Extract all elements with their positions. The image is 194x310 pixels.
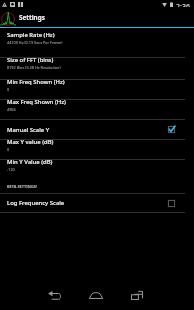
- button[interactable]: Min Freq Shown (Hz): [0, 80, 194, 99]
- button[interactable]: Log Frequency Scale: [0, 194, 194, 212]
- staticText: Sample Rate (Hz): [7, 31, 55, 39]
- staticText: Manual Scale Y: [7, 126, 50, 134]
- button[interactable]: Home: [82, 282, 110, 308]
- staticText: 44100 Hz (0.19 Secs Per Frame): [7, 40, 63, 45]
- staticText: Min Y Value (dB): [7, 158, 53, 166]
- staticText: 8192 Bins (5.38 Hz Resolution): [7, 65, 61, 70]
- staticText: 4956: [7, 107, 16, 112]
- staticText: 2:36: [176, 2, 190, 7]
- button[interactable]: Recents: [123, 282, 151, 308]
- button[interactable]: Min Y Value (dB): [0, 160, 194, 179]
- staticText: Settings: [19, 13, 45, 22]
- staticText: BETA SETTINGS!: [7, 184, 38, 189]
- staticText: Min Freq Shown (Hz): [7, 78, 65, 86]
- staticText: Max Freq Shown (Hz): [7, 98, 66, 106]
- button[interactable]: Max Y value (dB): [0, 140, 194, 159]
- staticText: Max Y value (dB): [7, 138, 54, 146]
- staticText: Size of FFT (bins): [7, 56, 54, 64]
- staticText: 0: [7, 147, 10, 152]
- staticText: 0: [7, 87, 10, 92]
- button[interactable]: Sample Rate (Hz): [0, 28, 194, 57]
- button[interactable]: Max Freq Shown (Hz): [0, 100, 194, 119]
- staticText: Log Frequency Scale: [7, 199, 65, 207]
- button[interactable]: Size of FFT (bins): [0, 58, 194, 79]
- staticText: -120: [7, 167, 15, 172]
- button[interactable]: Manual Scale Y: [0, 120, 194, 139]
- button[interactable]: Back: [40, 282, 68, 308]
